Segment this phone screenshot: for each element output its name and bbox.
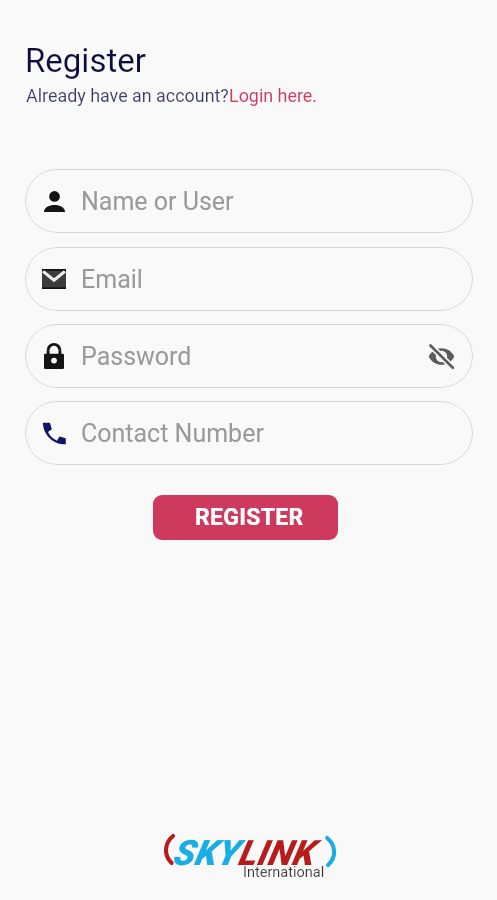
button[interactable]: REGISTER	[153, 495, 338, 540]
staticText: Already have an account?	[26, 85, 229, 106]
button[interactable]: Contact Number	[25, 401, 473, 465]
staticText: SKYLINK	[172, 833, 314, 874]
staticText: REGISTER	[195, 504, 304, 531]
button[interactable]: Email	[25, 247, 473, 311]
button[interactable]: Login here.	[229, 85, 317, 106]
staticText: Contact Number	[81, 419, 264, 448]
button[interactable]: Name or User	[25, 169, 473, 233]
button[interactable]: Toggle password visibility	[426, 341, 456, 371]
staticText: Register	[25, 41, 146, 80]
button[interactable]: Password	[25, 324, 473, 388]
staticText: Email	[81, 265, 143, 294]
staticText: International	[243, 864, 325, 881]
staticText: Name or User	[81, 187, 234, 216]
staticText: Password	[81, 342, 192, 371]
